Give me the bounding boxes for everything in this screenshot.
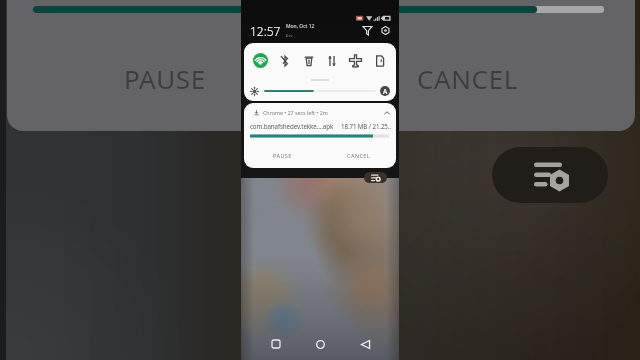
button[interactable]: Quick setting bbox=[277, 53, 292, 68]
button[interactable]: Filter bbox=[361, 24, 374, 37]
button[interactable]: Manage notifications bbox=[364, 172, 387, 183]
staticText: 12:57 bbox=[250, 23, 281, 38]
button[interactable]: Settings bbox=[379, 24, 392, 37]
staticText: Chrome • 27 secs left • 2m bbox=[263, 109, 328, 116]
staticText: CANCEL bbox=[347, 152, 371, 160]
button[interactable]: PAUSE bbox=[244, 145, 321, 166]
staticText: PAUSE bbox=[273, 152, 292, 160]
staticText: Jio bbox=[286, 33, 292, 37]
button[interactable]: Quick setting bbox=[372, 53, 387, 68]
button[interactable]: Quick setting bbox=[301, 53, 316, 68]
button[interactable]: Quick setting bbox=[253, 53, 268, 68]
staticText: CANCEL bbox=[417, 61, 518, 96]
button[interactable]: Home bbox=[310, 334, 330, 354]
button[interactable]: Back bbox=[355, 334, 375, 354]
button[interactable]: CANCEL bbox=[321, 145, 396, 166]
button[interactable]: Auto brightness bbox=[380, 86, 390, 96]
staticText: 18.71 MB / 21.25.. bbox=[341, 122, 391, 130]
button[interactable]: Recents bbox=[266, 334, 286, 354]
button[interactable]: Quick setting bbox=[348, 53, 363, 68]
staticText: PAUSE bbox=[124, 61, 206, 96]
staticText: com.banafshedev.tekke....apk bbox=[250, 122, 334, 130]
button[interactable]: Quick setting bbox=[324, 53, 339, 68]
staticText: A bbox=[383, 87, 388, 96]
staticText: Mon, Oct 12 bbox=[286, 23, 315, 30]
button[interactable]: Collapse notification bbox=[382, 108, 392, 118]
